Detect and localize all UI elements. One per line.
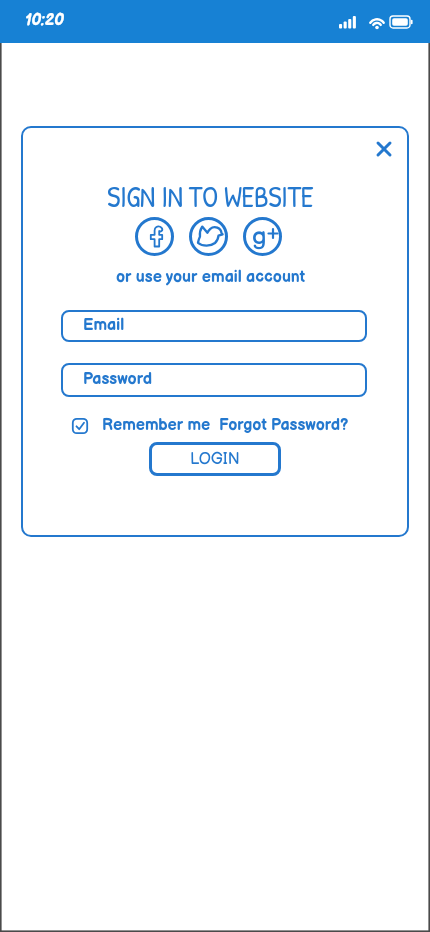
button[interactable]: Remember me Forgot Password? (72, 416, 349, 435)
staticText: 10:20 (25, 11, 64, 30)
staticText: or use your email account (116, 268, 306, 287)
staticText: Password (83, 370, 153, 389)
button[interactable] (135, 217, 174, 256)
staticText: Remember me Forgot Password? (102, 416, 349, 435)
button[interactable] (372, 137, 396, 161)
staticText: Email (83, 316, 125, 335)
button[interactable]: Email (61, 310, 367, 342)
button[interactable]: LOGIN (149, 442, 281, 476)
button[interactable]: Password (61, 363, 367, 397)
staticText: SIGN IN TO WEBSITE (107, 177, 314, 216)
staticText: LOGIN (190, 450, 240, 469)
staticText: g (252, 221, 267, 251)
button[interactable]: g (243, 217, 282, 256)
button[interactable] (189, 217, 228, 256)
